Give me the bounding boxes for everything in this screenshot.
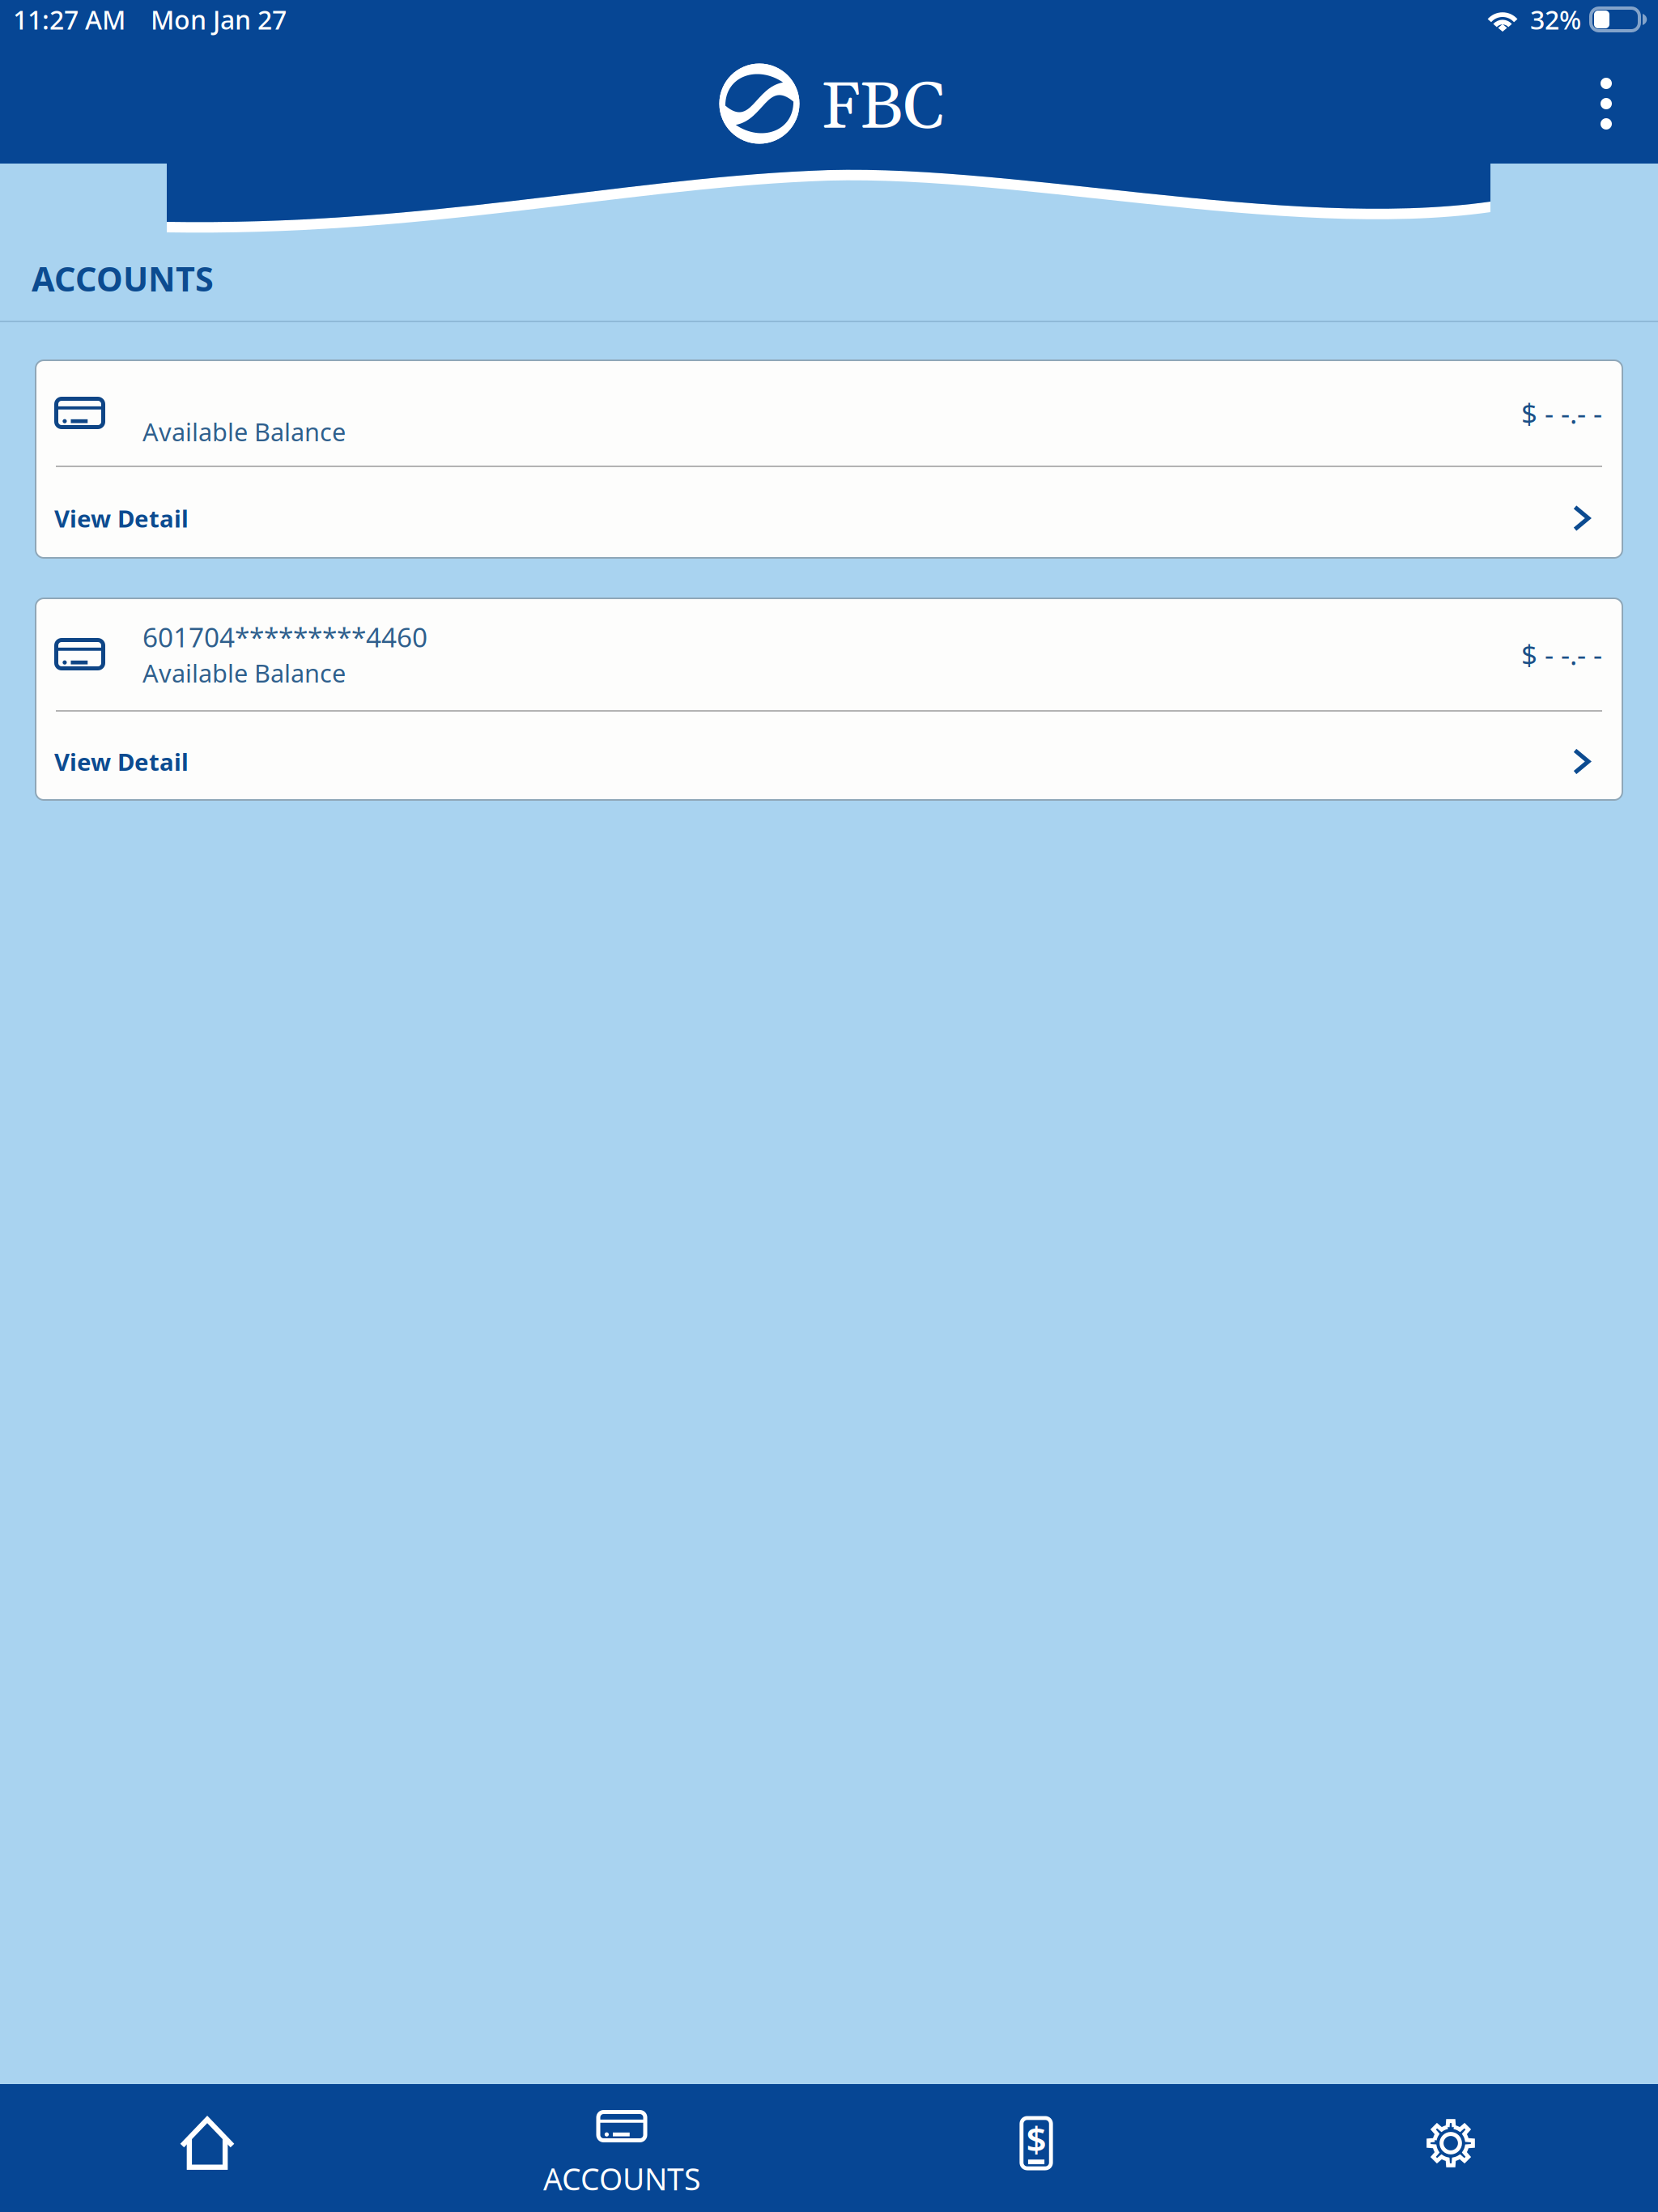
staticText: $ - -.- - — [1521, 636, 1602, 673]
staticText: ACCOUNTS — [543, 2159, 700, 2199]
staticText: ACCOUNTS — [32, 256, 214, 301]
button[interactable]: View Detail — [36, 712, 1622, 800]
staticText: View Detail — [54, 502, 189, 534]
button[interactable]: View Detail — [36, 467, 1622, 558]
staticText: $ - -.- - — [1521, 394, 1602, 432]
button[interactable]: ACCOUNTS — [414, 2084, 829, 2212]
staticText: 32% — [1530, 2, 1581, 37]
button[interactable]: Pay bill — [829, 2084, 1243, 2212]
button[interactable]: More options — [1567, 36, 1658, 149]
staticText: Available Balance — [142, 415, 346, 448]
staticText: Available Balance — [142, 656, 346, 689]
staticText: Mon Jan 27 — [151, 2, 287, 37]
staticText: 601704*********4460 — [142, 619, 427, 655]
staticText: $ — [1026, 2115, 1046, 2162]
staticText: FBC — [820, 67, 945, 150]
button[interactable]: Settings — [1243, 2084, 1658, 2212]
staticText: 11:27 AM — [13, 2, 125, 37]
button[interactable]: Home — [0, 2084, 414, 2212]
staticText: View Detail — [54, 746, 189, 777]
